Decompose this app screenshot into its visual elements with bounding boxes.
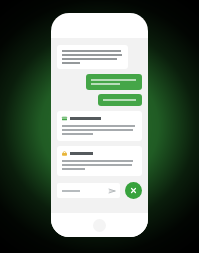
button[interactable]	[86, 74, 142, 90]
button[interactable]: Close	[125, 182, 142, 199]
button[interactable]: Send	[57, 183, 120, 198]
button[interactable]: Card	[57, 111, 142, 141]
button[interactable]: Secure	[57, 146, 142, 176]
other: Send	[109, 188, 115, 194]
button[interactable]	[57, 45, 128, 69]
other: Secure	[62, 151, 67, 156]
other: Card	[62, 116, 67, 121]
button[interactable]	[98, 94, 142, 106]
